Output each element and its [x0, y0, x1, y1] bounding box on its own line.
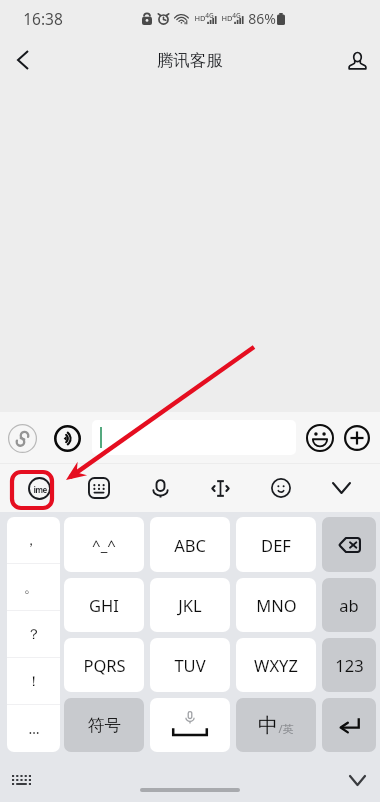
staticText: /英 [278, 721, 294, 736]
button[interactable]: TUV [150, 638, 230, 692]
staticText: PQRS [83, 654, 126, 676]
button[interactable]: 符号 [64, 698, 144, 752]
button[interactable]: JKL [150, 578, 230, 632]
button[interactable]: ABC [150, 517, 230, 572]
button[interactable]: DEF [236, 517, 316, 572]
staticText: 中 [258, 713, 278, 738]
button[interactable] [322, 517, 376, 572]
button[interactable]: More options [341, 422, 373, 454]
button[interactable]: GHI [64, 578, 144, 632]
button[interactable]: 。 [7, 564, 60, 611]
staticText: ^_^ [92, 535, 116, 555]
button[interactable]: Collapse [319, 468, 363, 508]
staticText: HD [194, 13, 206, 23]
staticText: JKL [178, 594, 202, 616]
button[interactable]: Back [0, 37, 46, 83]
button[interactable]: Emoji [304, 422, 336, 454]
staticText: MNO [256, 594, 297, 616]
staticText: 123 [335, 654, 364, 676]
staticText: GHI [89, 594, 119, 616]
staticText: DEF [261, 534, 291, 556]
staticText: 4G [205, 11, 214, 20]
button[interactable]: Voice input [138, 468, 182, 508]
button[interactable]: Voice message [51, 422, 83, 454]
staticText: 86% [248, 9, 276, 28]
button[interactable] [150, 698, 230, 752]
staticText: ABC [174, 534, 206, 556]
staticText: 。 [24, 579, 38, 597]
staticText: 符号 [88, 715, 121, 736]
button[interactable]: 123 [322, 638, 376, 692]
staticText: ！ [27, 673, 41, 691]
button[interactable]: Keyboard [77, 468, 121, 508]
button[interactable]: 中 [236, 698, 316, 752]
staticText: ？ [27, 626, 41, 644]
staticText: WXYZ [254, 654, 298, 676]
button[interactable]: WXYZ [236, 638, 316, 692]
button[interactable]: Hide keyboard [340, 763, 374, 797]
button[interactable]: Mini program [6, 422, 38, 454]
staticText: 4G [232, 11, 241, 20]
button[interactable] [322, 698, 376, 752]
button[interactable]: Emoticons [259, 468, 303, 508]
button[interactable]: Input method [17, 468, 61, 508]
button[interactable]: ？ [7, 611, 60, 658]
staticText: TUV [174, 654, 206, 676]
button[interactable]: MNO [236, 578, 316, 632]
staticText: ab [339, 594, 359, 616]
button[interactable]: Switch keyboard layout [4, 763, 38, 797]
button[interactable]: Contact profile [334, 37, 380, 83]
button[interactable]: ab [322, 578, 376, 632]
button[interactable] [92, 420, 296, 455]
button[interactable]: … [7, 705, 60, 752]
staticText: 腾讯客服 [157, 50, 223, 71]
button[interactable]: PQRS [64, 638, 144, 692]
button[interactable]: ， [7, 517, 60, 564]
staticText: … [28, 719, 40, 738]
staticText: ， [24, 532, 38, 550]
button[interactable]: Move cursor [198, 468, 242, 508]
staticText: 16:38 [23, 8, 63, 29]
staticText: ime [33, 484, 47, 495]
button[interactable]: ^_^ [64, 517, 144, 572]
button[interactable]: ！ [7, 658, 60, 705]
staticText: HD [221, 13, 233, 23]
